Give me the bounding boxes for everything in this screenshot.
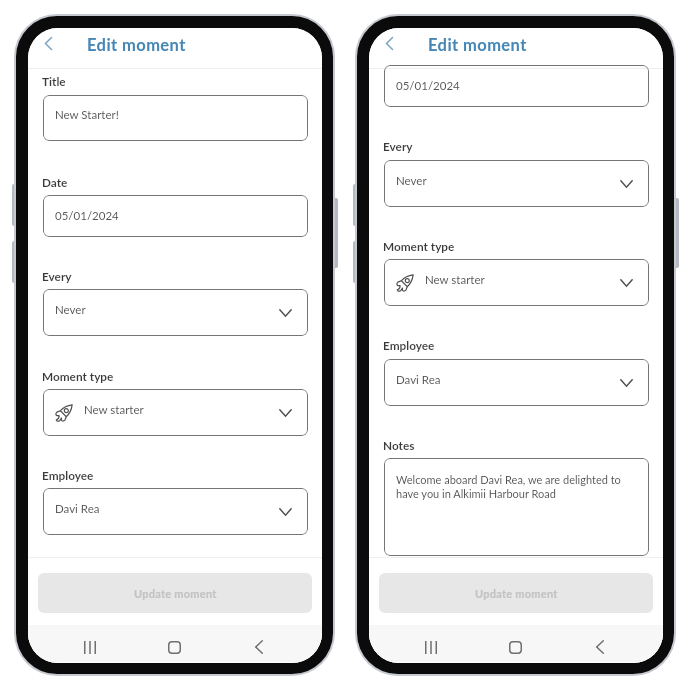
button[interactable]: Never xyxy=(43,289,308,336)
staticText: Edit moment xyxy=(428,35,527,55)
staticText: Every xyxy=(42,269,72,283)
staticText: Never xyxy=(396,174,427,188)
button[interactable]: Back xyxy=(239,630,279,663)
button[interactable]: Update moment xyxy=(379,573,653,613)
button[interactable]: 05/01/2024 xyxy=(43,195,308,237)
staticText: 05/01/2024 xyxy=(55,209,119,223)
staticText: Update moment xyxy=(134,587,217,600)
staticText: Welcome aboard Davi Rea, we are delighte… xyxy=(396,473,621,500)
button[interactable]: Recents xyxy=(411,630,451,663)
button[interactable]: Back xyxy=(580,630,620,663)
button[interactable]: Update moment xyxy=(38,573,312,613)
staticText: Employee xyxy=(383,338,435,352)
staticText: Davi Rea xyxy=(55,502,100,516)
button[interactable]: New starter xyxy=(43,389,308,436)
staticText: New Starter! xyxy=(55,108,119,122)
staticText: Edit moment xyxy=(87,35,186,55)
staticText: Davi Rea xyxy=(396,373,441,387)
staticText: New starter xyxy=(425,273,485,287)
button[interactable]: 05/01/2024 xyxy=(384,65,649,107)
button[interactable]: Recents xyxy=(70,630,110,663)
button[interactable]: New Starter! xyxy=(43,95,308,141)
button[interactable]: New starter xyxy=(384,259,649,306)
staticText: New starter xyxy=(84,403,144,417)
button[interactable]: Back xyxy=(36,31,60,55)
button[interactable]: Home xyxy=(495,630,535,663)
staticText: Title xyxy=(42,74,66,88)
button[interactable]: Home xyxy=(154,630,194,663)
button[interactable]: Davi Rea xyxy=(384,359,649,406)
button[interactable]: Back xyxy=(377,31,401,55)
staticText: Employee xyxy=(42,468,94,482)
staticText: Update moment xyxy=(475,587,558,600)
staticText: Moment type xyxy=(383,239,455,253)
button[interactable]: Welcome aboard Davi Rea, we are delighte… xyxy=(384,458,649,556)
staticText: Never xyxy=(55,303,86,317)
staticText: Date xyxy=(42,175,68,189)
staticText: Notes xyxy=(383,438,415,452)
button[interactable]: Davi Rea xyxy=(43,488,308,535)
button[interactable]: Never xyxy=(384,160,649,207)
staticText: Every xyxy=(383,139,413,153)
staticText: Moment type xyxy=(42,369,114,383)
staticText: 05/01/2024 xyxy=(396,79,460,93)
